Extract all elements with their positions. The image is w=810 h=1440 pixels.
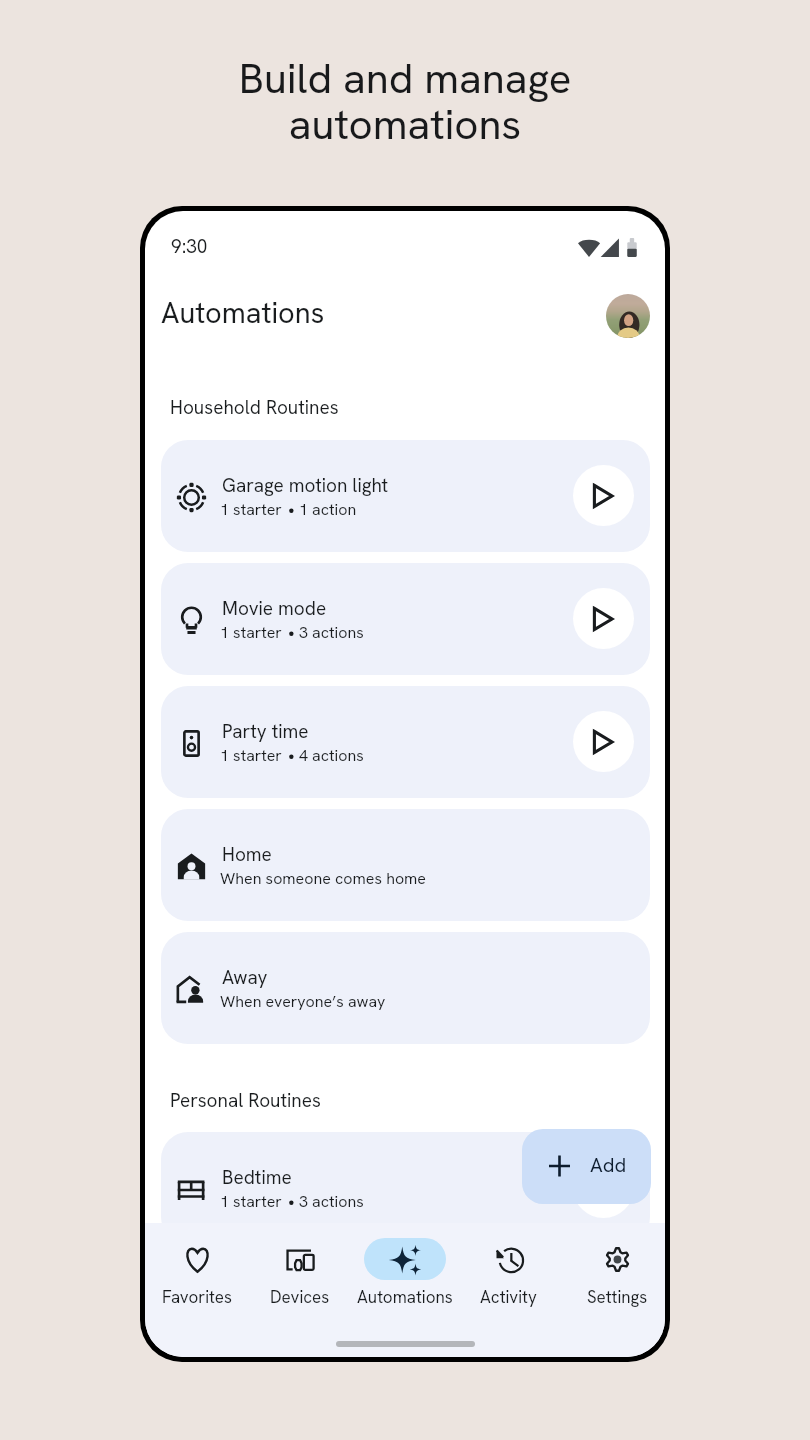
staticText: Devices bbox=[270, 1286, 330, 1308]
staticText: Add bbox=[590, 1152, 627, 1178]
staticText: 1 starter bbox=[220, 622, 282, 643]
staticText: When someone comes home bbox=[220, 868, 427, 889]
button[interactable]: Home bbox=[161, 809, 650, 921]
staticText: automations bbox=[0, 97, 810, 152]
staticText: 4 actions bbox=[299, 745, 364, 766]
staticText: 1 starter bbox=[220, 745, 282, 766]
staticText: Activity bbox=[480, 1286, 537, 1308]
button[interactable]: Movie mode bbox=[161, 563, 650, 675]
staticText: Automations bbox=[357, 1286, 453, 1308]
button[interactable]: Settings bbox=[565, 1238, 665, 1308]
staticText: Party time bbox=[222, 719, 309, 744]
staticText: Movie mode bbox=[222, 596, 327, 621]
staticText: Build and manage bbox=[0, 51, 810, 106]
staticText: Personal Routines bbox=[170, 1088, 321, 1113]
button[interactable]: Account bbox=[606, 294, 650, 338]
staticText: Automations bbox=[161, 294, 325, 332]
button[interactable]: Play routine bbox=[573, 465, 634, 526]
staticText: Home bbox=[222, 842, 272, 867]
button[interactable]: Devices bbox=[248, 1238, 352, 1308]
button[interactable]: Play routine bbox=[573, 711, 634, 772]
button[interactable]: Automations bbox=[353, 1238, 457, 1308]
button[interactable]: Party time bbox=[161, 686, 650, 798]
staticText: Garage motion light bbox=[222, 473, 389, 498]
staticText: When everyone’s away bbox=[220, 991, 386, 1012]
staticText: Bedtime bbox=[222, 1165, 292, 1190]
staticText: Settings bbox=[587, 1286, 648, 1308]
staticText: 9:30 bbox=[171, 234, 208, 259]
staticText: 3 actions bbox=[299, 622, 364, 643]
button[interactable]: Add bbox=[522, 1129, 651, 1204]
button[interactable]: Activity bbox=[456, 1238, 560, 1308]
staticText: Favorites bbox=[162, 1286, 232, 1308]
staticText: 1 action bbox=[299, 499, 357, 520]
staticText: 1 starter bbox=[220, 499, 282, 520]
staticText: Away bbox=[222, 965, 268, 990]
button[interactable]: Bedtime bbox=[161, 1132, 650, 1244]
button[interactable]: Play routine bbox=[573, 1157, 634, 1218]
staticText: Household Routines bbox=[170, 395, 339, 420]
button[interactable]: Play routine bbox=[573, 588, 634, 649]
button[interactable]: Away bbox=[161, 932, 650, 1044]
button[interactable]: Garage motion light bbox=[161, 440, 650, 552]
staticText: 3 actions bbox=[299, 1191, 364, 1212]
button[interactable]: Favorites bbox=[145, 1238, 249, 1308]
staticText: 1 starter bbox=[220, 1191, 282, 1212]
